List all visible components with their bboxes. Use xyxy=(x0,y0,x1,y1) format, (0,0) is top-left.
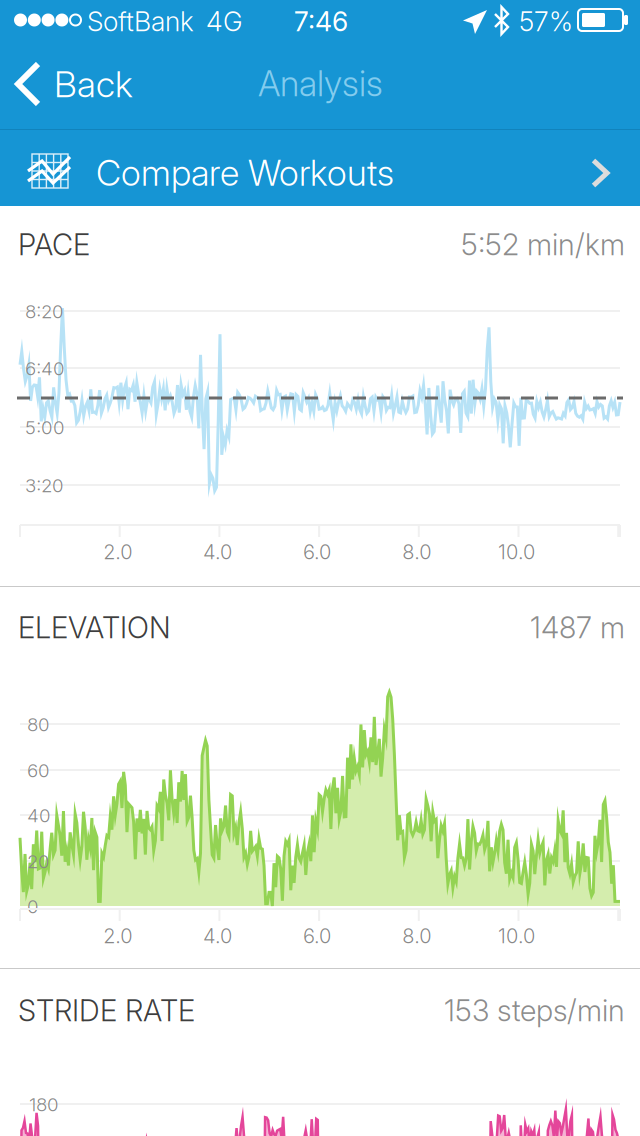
staticText: 10.0 xyxy=(498,924,535,948)
staticText: 153 steps/min xyxy=(444,993,625,1028)
staticText: 2.0 xyxy=(103,924,132,948)
staticText: 180 xyxy=(29,1093,59,1116)
staticText: 5:00 xyxy=(25,416,65,439)
staticText: 1487 m xyxy=(530,610,625,645)
staticText: 6.0 xyxy=(303,924,331,948)
button[interactable]: Back xyxy=(0,40,190,129)
staticText: 3:20 xyxy=(25,474,64,497)
staticText: 57% xyxy=(519,5,573,38)
staticText: 2.0 xyxy=(103,540,132,564)
staticText: Compare Workouts xyxy=(96,152,394,194)
staticText: 6.0 xyxy=(303,540,331,564)
staticText: 8:20 xyxy=(25,300,64,323)
staticText: SoftBank xyxy=(87,5,194,38)
staticText: Back xyxy=(54,62,133,106)
staticText: 4.0 xyxy=(203,540,232,564)
staticText: 10.0 xyxy=(498,540,535,564)
staticText: 40 xyxy=(27,804,51,827)
button[interactable]: Compare Workouts xyxy=(0,130,640,206)
staticText: 8.0 xyxy=(402,540,431,564)
staticText: 6:40 xyxy=(25,357,65,380)
staticText: PACE xyxy=(18,227,90,262)
staticText: 60 xyxy=(27,759,50,782)
staticText: STRIDE RATE xyxy=(18,993,195,1028)
staticText: 4G xyxy=(206,5,243,38)
staticText: 4.0 xyxy=(203,924,232,948)
staticText: ELEVATION xyxy=(18,610,171,645)
staticText: 0 xyxy=(27,895,39,918)
staticText: 20 xyxy=(27,850,50,873)
staticText: 7:46 xyxy=(294,5,348,38)
staticText: 80 xyxy=(27,713,50,736)
staticText: 5:52 min/km xyxy=(461,227,625,262)
staticText: 8.0 xyxy=(402,924,431,948)
staticText: Analysis xyxy=(258,63,383,105)
